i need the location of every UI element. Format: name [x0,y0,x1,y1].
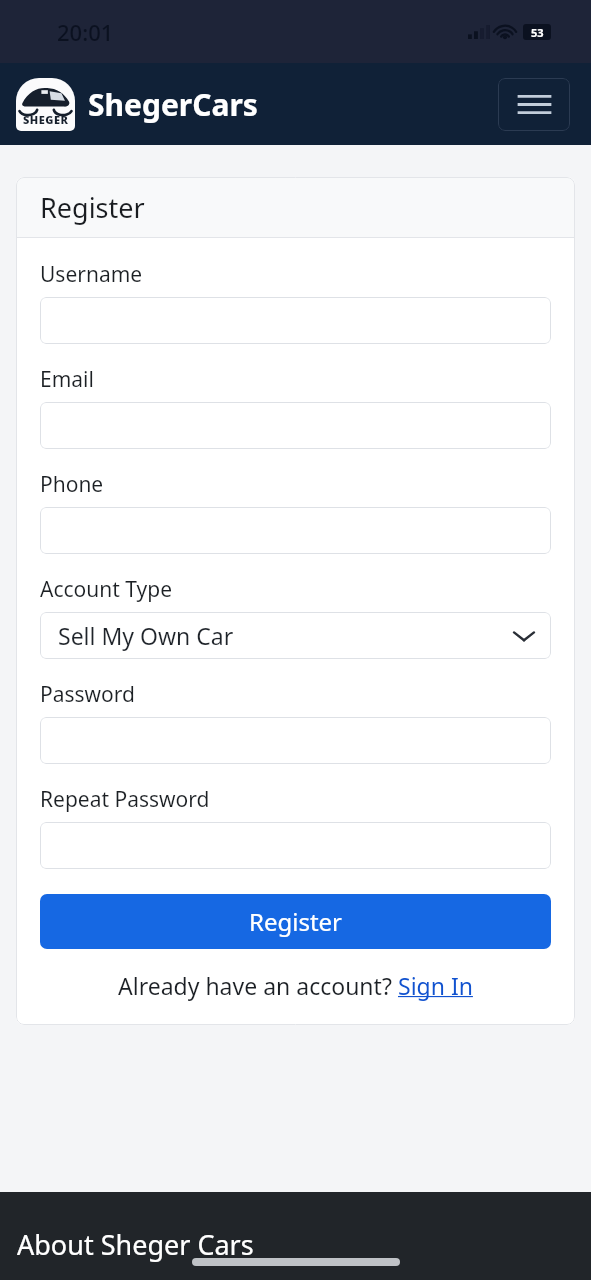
button[interactable]: Password input field [40,717,551,764]
button[interactable]: Sign In [398,970,473,1001]
button[interactable]: SHEGER [16,78,258,131]
button[interactable]: Repeat Password input field [40,822,551,869]
button[interactable]: Username input field [40,297,551,344]
staticText: Register [40,189,145,226]
staticText: Email [40,365,94,394]
staticText: Sell My Own Car [58,620,234,651]
staticText: Account Type [40,575,173,604]
staticText: Password [40,680,135,709]
button[interactable]: Open navigation menu [498,78,570,131]
button[interactable]: Phone input field [40,507,551,554]
staticText: Phone [40,470,104,499]
button[interactable]: Email input field [40,402,551,449]
staticText: Register [249,905,343,938]
staticText: Already have an account? [118,970,398,1001]
button[interactable]: Register [40,894,551,949]
staticText: 53 [531,25,544,40]
button[interactable]: Sell My Own Car [40,612,551,659]
staticText: Sign In [398,970,473,1001]
staticText: About Sheger Cars [17,1226,254,1263]
staticText: Repeat Password [40,785,210,814]
staticText: ShegerCars [88,84,258,125]
staticText: Username [40,260,143,289]
staticText: SHEGER [23,112,69,127]
staticText: 20:01 [57,17,114,47]
